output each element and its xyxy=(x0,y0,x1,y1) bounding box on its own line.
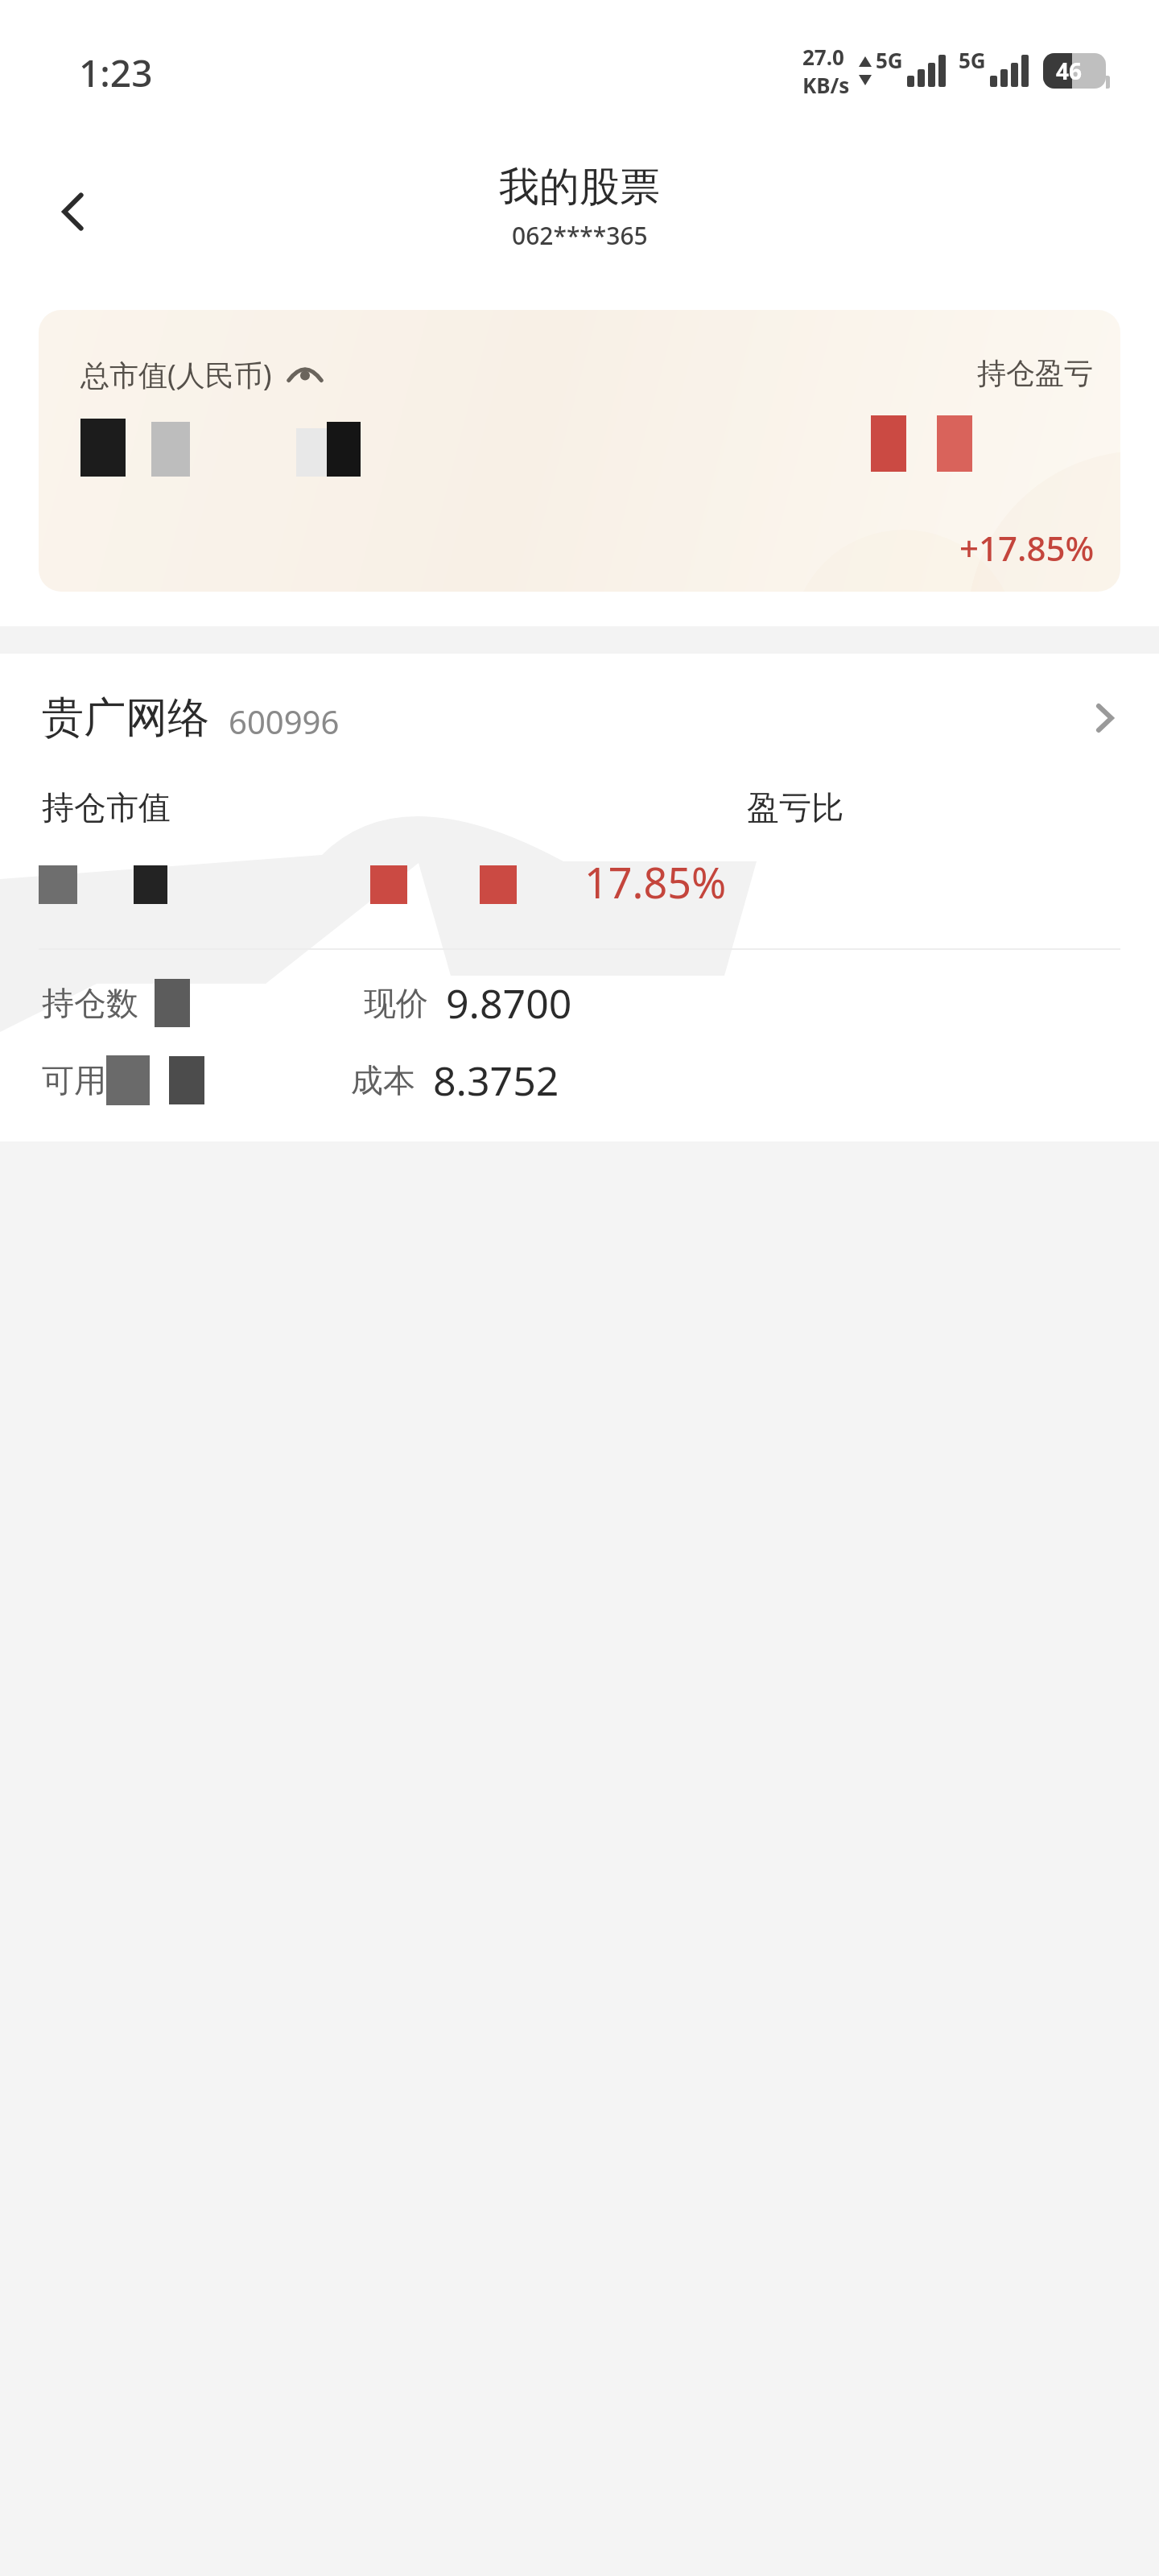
button[interactable]: 贵广网络 xyxy=(0,654,1159,782)
staticText: +17.85% xyxy=(959,525,1095,571)
staticText: 持仓盈亏 xyxy=(977,355,1093,391)
button[interactable]: Back xyxy=(35,173,113,250)
staticText: 8.3752 xyxy=(433,1053,559,1108)
staticText: 5G xyxy=(959,46,986,74)
staticText: 1:23 xyxy=(79,47,153,98)
staticText: 持仓数 xyxy=(42,983,138,1023)
staticText: 46 xyxy=(1056,56,1083,86)
staticText: 27.0 xyxy=(802,43,844,71)
staticText: 062****365 xyxy=(512,219,648,252)
staticText: 5G xyxy=(876,46,903,74)
staticText: 持仓市值 xyxy=(42,787,171,828)
staticText: KB/s xyxy=(802,71,850,99)
staticText: 贵广网络 xyxy=(42,691,209,745)
staticText: 我的股票 xyxy=(499,162,660,213)
staticText: 600996 xyxy=(229,700,340,743)
button[interactable]: 总市值(人民币) xyxy=(39,310,1120,592)
staticText: 9.8700 xyxy=(446,976,572,1030)
staticText: 17.85% xyxy=(584,853,727,910)
button[interactable]: Toggle visibility xyxy=(287,361,324,389)
staticText: 总市值(人民币) xyxy=(80,355,272,394)
staticText: 盈亏比 xyxy=(747,787,843,828)
staticText: 成本 xyxy=(351,1060,415,1100)
staticText: 现价 xyxy=(364,983,428,1023)
staticText: 可用 xyxy=(42,1060,106,1100)
